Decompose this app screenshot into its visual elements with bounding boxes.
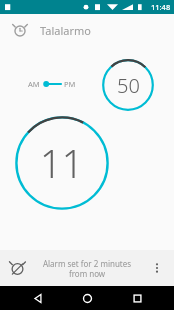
staticText: AM: [28, 79, 40, 89]
staticText: Alarm set for 2 minutes from now: [37, 258, 137, 279]
button[interactable]: Back: [26, 286, 50, 310]
button[interactable]: Alarm: [10, 20, 30, 40]
staticText: 11: [40, 137, 84, 189]
button[interactable]: Minutes 50: [101, 58, 155, 112]
button[interactable]: Home: [75, 286, 99, 310]
button[interactable]: Alarm off: [6, 257, 28, 279]
button[interactable]: Recent apps: [125, 286, 149, 310]
button[interactable]: Hours 11: [14, 115, 110, 211]
staticText: PM: [64, 79, 76, 89]
staticText: Talalarmo: [40, 23, 91, 38]
button[interactable]: More options: [146, 257, 168, 279]
button[interactable]: AM: [26, 77, 78, 91]
staticText: 50: [117, 72, 140, 99]
staticText: 11:48: [151, 2, 171, 12]
